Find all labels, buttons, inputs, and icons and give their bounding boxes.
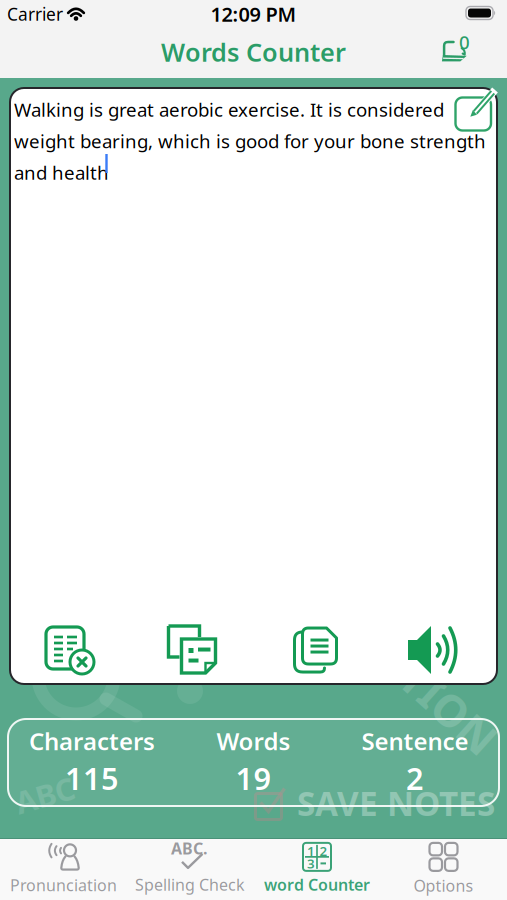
staticText: Pronunciation — [10, 874, 117, 896]
button[interactable]: ABC. — [127, 842, 253, 896]
staticText: Words — [216, 725, 290, 757]
staticText: Carrier — [7, 2, 63, 25]
button[interactable]: Speak text — [407, 620, 467, 680]
button[interactable]: Saved notes — [435, 33, 475, 69]
staticText: Walking is great aerobic exercise. It is… — [14, 97, 486, 185]
staticText: TION — [392, 679, 505, 737]
staticText: 0 — [459, 30, 470, 54]
staticText: Options — [413, 875, 473, 896]
button[interactable]: Options — [380, 842, 506, 896]
button[interactable]: Copy — [284, 620, 344, 680]
staticText: 19 — [235, 758, 271, 798]
staticText: word Counter — [264, 874, 370, 895]
staticText: 12:09 PM — [210, 1, 296, 27]
staticText: SAVE NOTES — [297, 781, 495, 825]
staticText: Characters — [29, 725, 155, 757]
button[interactable]: Edit — [454, 89, 504, 139]
staticText: ABC — [14, 775, 75, 815]
button[interactable]: Paste — [162, 620, 222, 680]
button[interactable]: Pronunciation — [0, 842, 126, 896]
button[interactable]: 1 — [254, 842, 380, 896]
staticText: 2 — [406, 758, 424, 798]
staticText: Sentence — [361, 725, 468, 757]
staticText: 115 — [65, 758, 119, 798]
staticText: ABC. — [171, 838, 207, 859]
staticText: 2 — [319, 842, 327, 860]
staticText: Words Counter — [161, 35, 346, 69]
staticText: Spelling Check — [135, 874, 245, 895]
button[interactable]: Clear text — [41, 620, 101, 680]
staticText: 1 — [307, 842, 315, 860]
staticText: 3 — [307, 854, 315, 872]
